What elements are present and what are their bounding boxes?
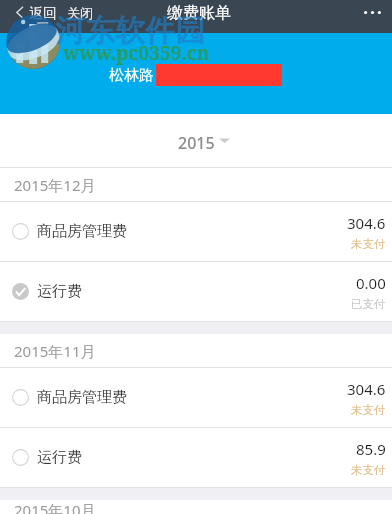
staticText: 河东软件园: [55, 12, 205, 50]
staticText: 未支付: [351, 237, 386, 251]
staticText: 304.6: [347, 379, 386, 399]
staticText: 2015年10月: [14, 500, 96, 514]
button[interactable]: 2015: [0, 114, 392, 167]
button[interactable]: 商品房管理费: [0, 202, 392, 261]
button[interactable]: 商品房管理费: [0, 368, 392, 427]
staticText: 85.9: [356, 439, 386, 459]
staticText: 未支付: [351, 463, 386, 477]
staticText: 商品房管理费: [37, 388, 127, 407]
staticText: 2015年12月: [14, 175, 96, 195]
staticText: 运行费: [37, 282, 82, 301]
staticText: 已支付: [351, 297, 386, 311]
button[interactable]: More options: [353, 2, 392, 23]
button[interactable]: 关闭: [63, 0, 97, 25]
button[interactable]: 运行费: [0, 428, 392, 487]
staticText: 松林路: [109, 66, 154, 85]
staticText: 运行费: [37, 448, 82, 467]
staticText: www.pc0359.cn: [63, 40, 210, 66]
staticText: 2015年11月: [14, 341, 96, 361]
staticText: 未支付: [351, 403, 386, 417]
staticText: 商品房管理费: [37, 222, 127, 241]
staticText: 缴费账单: [167, 3, 231, 23]
staticText: 返回: [29, 5, 57, 20]
button[interactable]: 运行费: [0, 262, 392, 321]
staticText: 304.6: [347, 213, 386, 233]
staticText: 2015: [178, 132, 215, 154]
staticText: 0.00: [356, 273, 386, 293]
button[interactable]: 返回: [12, 0, 61, 25]
